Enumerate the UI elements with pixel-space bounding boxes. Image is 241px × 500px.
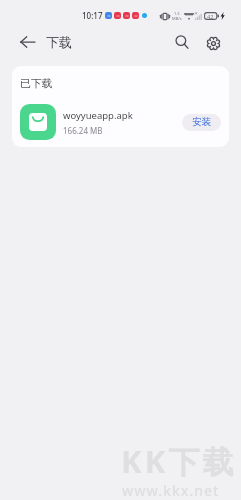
staticText: MB/s [172,16,182,21]
staticText: 42 [207,13,214,20]
button[interactable]: Search [170,30,194,54]
button[interactable]: 安装 [182,114,221,131]
button[interactable]: woyyueapp.apk [12,100,229,144]
staticText: 10:17 [82,10,103,21]
button[interactable]: Settings [201,31,225,55]
staticText: 已下载 [20,77,53,91]
button[interactable]: Back [15,30,39,54]
staticText: www.kkx.net [122,481,220,500]
staticText: woyyueapp.apk [63,109,133,122]
staticText: KK下载 [121,440,237,482]
staticText: 下载 [46,34,72,50]
staticText: 166.24 MB [63,125,103,136]
staticText: 安装 [192,116,211,128]
staticText: 1.3 [174,11,180,16]
